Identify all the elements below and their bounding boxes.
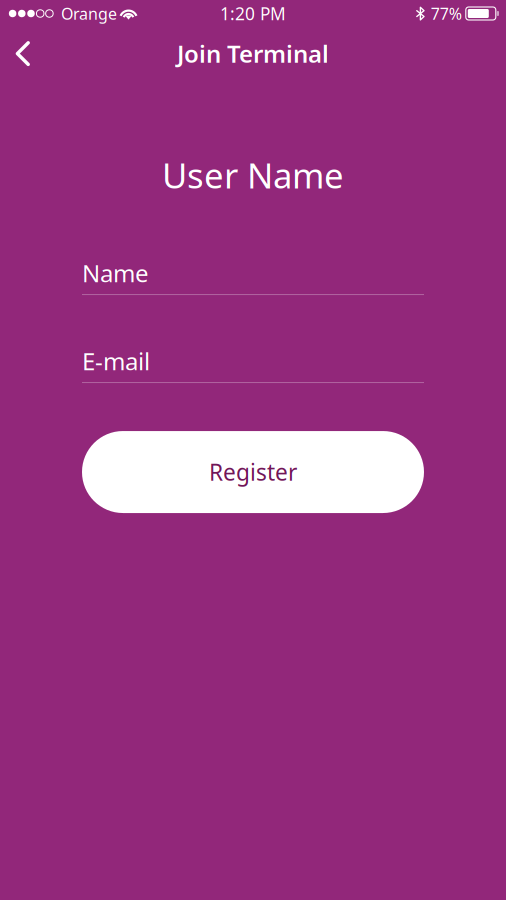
button[interactable]: Back	[0, 27, 47, 74]
staticText: Register	[209, 457, 297, 487]
button[interactable]: Name	[82, 262, 424, 295]
staticText: 1:20 PM	[220, 2, 286, 25]
button[interactable]: E-mail	[82, 350, 424, 383]
staticText: Orange	[61, 3, 117, 24]
staticText: E-mail	[82, 345, 150, 377]
staticText: Name	[82, 257, 149, 289]
staticText: User Name	[162, 152, 344, 198]
staticText: Join Terminal	[177, 38, 329, 69]
staticText: 77%	[431, 3, 462, 24]
button[interactable]: Register	[82, 431, 424, 513]
